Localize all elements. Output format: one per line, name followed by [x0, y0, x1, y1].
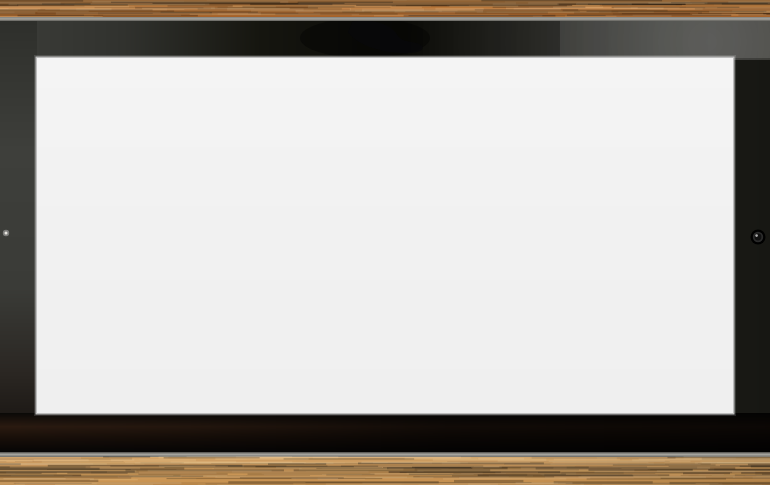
button[interactable]: Tablet display — [0, 0, 770, 485]
